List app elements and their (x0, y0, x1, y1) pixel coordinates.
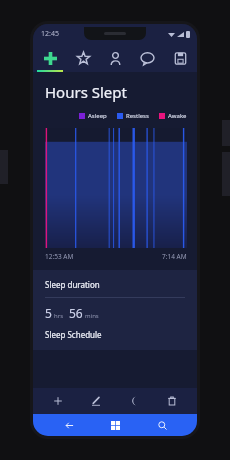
button[interactable]: Search (151, 414, 173, 436)
button[interactable]: Notes (165, 44, 195, 72)
button[interactable]: Messages (132, 44, 162, 72)
button[interactable]: Home (104, 414, 126, 436)
button[interactable]: Back (58, 414, 80, 436)
staticText: 5 (45, 305, 52, 321)
button[interactable]: Edit (83, 388, 109, 414)
staticText: 56 (69, 305, 83, 321)
staticText: Restless (126, 112, 149, 120)
button[interactable]: Favorites (68, 44, 98, 72)
staticText: Sleep duration (45, 279, 100, 290)
staticText: Hours Slept (45, 82, 127, 102)
button[interactable]: Sleep (35, 44, 65, 72)
staticText: hrs (54, 312, 64, 320)
staticText: Asleep (88, 112, 107, 120)
button[interactable]: Delete (159, 388, 185, 414)
button[interactable]: Profile (100, 44, 130, 72)
staticText: 12:45 (41, 29, 59, 39)
button[interactable]: Add (45, 388, 71, 414)
staticText: mins (85, 312, 99, 320)
button[interactable]: Night mode (121, 388, 147, 414)
staticText: 12:53 AM (45, 252, 74, 261)
staticText: 7:14 AM (162, 252, 187, 261)
staticText: Awake (168, 112, 187, 120)
staticText: Sleep Schedule (45, 329, 102, 340)
